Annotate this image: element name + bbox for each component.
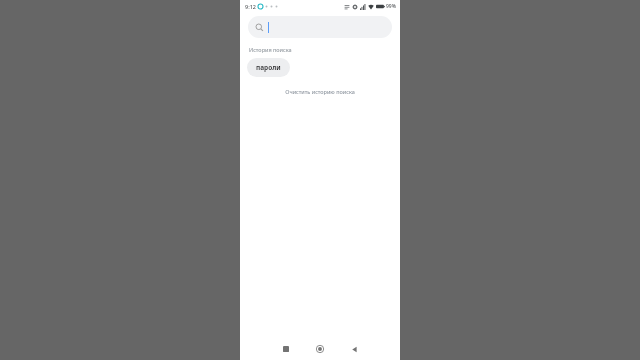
staticText: 9:12 (245, 3, 256, 10)
button[interactable]: Recents (275, 338, 297, 360)
button[interactable]: Home (309, 338, 331, 360)
button[interactable]: Search (248, 16, 392, 38)
button[interactable]: пароли (247, 58, 290, 77)
staticText: История поиска (249, 46, 292, 53)
button[interactable]: Очистить историю поиска (240, 85, 400, 98)
staticText: пароли (256, 63, 281, 72)
staticText: Очистить историю поиска (285, 88, 355, 95)
staticText: 99% (386, 3, 396, 10)
button[interactable]: Back (343, 338, 365, 360)
